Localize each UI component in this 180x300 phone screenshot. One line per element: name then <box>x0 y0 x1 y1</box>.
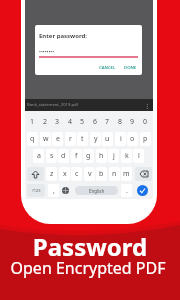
button[interactable]: . <box>121 184 132 197</box>
button[interactable]: i <box>115 132 126 146</box>
staticText: 7 <box>105 117 110 127</box>
button[interactable]: k <box>121 149 132 163</box>
button[interactable]: 6 <box>90 115 101 128</box>
staticText: 5 <box>80 117 85 127</box>
button[interactable]: r <box>65 132 76 146</box>
button[interactable]: x <box>59 167 70 181</box>
button[interactable]: 5 <box>77 115 88 128</box>
button[interactable]: l <box>133 149 144 163</box>
staticText: v <box>88 169 92 179</box>
button[interactable] <box>27 167 44 181</box>
button[interactable]: 4 <box>65 115 76 128</box>
staticText: r <box>69 134 72 144</box>
button[interactable]: 0 <box>140 115 151 128</box>
button[interactable]: c <box>71 167 82 181</box>
staticText: 6 <box>93 117 98 127</box>
button[interactable]: y <box>90 132 101 146</box>
staticText: z <box>50 169 54 179</box>
staticText: 3 <box>55 117 60 127</box>
staticText: w <box>43 134 49 144</box>
button[interactable]: ?123 <box>27 184 45 197</box>
button[interactable]: f <box>71 149 82 163</box>
staticText: j <box>113 151 115 161</box>
button[interactable]: u <box>102 132 113 146</box>
button[interactable]: h <box>96 149 107 163</box>
staticText: Password <box>0 230 180 263</box>
button[interactable]: q <box>27 132 38 146</box>
staticText: m <box>123 169 130 179</box>
button[interactable]: 7 <box>102 115 113 128</box>
staticText: k <box>125 151 129 161</box>
button[interactable]: w <box>40 132 51 146</box>
staticText: 4 <box>68 117 73 127</box>
staticText: b <box>99 169 104 179</box>
staticText: CANCEL <box>99 64 116 70</box>
staticText: DONE <box>124 64 137 70</box>
button[interactable]: 2 <box>40 115 51 128</box>
staticText: x <box>63 169 67 179</box>
staticText: 1 <box>30 117 35 127</box>
staticText: 8 <box>118 117 123 127</box>
staticText: u <box>105 134 110 144</box>
staticText: Enter password: <box>39 32 88 40</box>
button[interactable]: m <box>121 167 132 181</box>
staticText: . <box>126 186 128 196</box>
staticText: s <box>50 151 54 161</box>
staticText: ⋮ <box>144 102 150 109</box>
button[interactable]: d <box>58 149 69 163</box>
staticText: e <box>56 134 60 144</box>
button[interactable]: v <box>84 167 95 181</box>
button[interactable]: 3 <box>52 115 63 128</box>
staticText: English <box>89 188 105 194</box>
button[interactable] <box>135 167 152 181</box>
button[interactable]: g <box>83 149 94 163</box>
staticText: i <box>120 134 122 144</box>
staticText: f <box>75 151 78 161</box>
staticText: 0 <box>143 117 148 127</box>
button[interactable]: a <box>33 149 44 163</box>
staticText: 2 <box>43 117 48 127</box>
staticText: o <box>130 134 135 144</box>
button[interactable]: o <box>127 132 138 146</box>
button[interactable]: b <box>96 167 107 181</box>
button[interactable]: , <box>48 184 59 197</box>
button[interactable] <box>60 184 70 197</box>
staticText: Bank_statement_2019.pdf <box>27 102 79 108</box>
button[interactable]: s <box>46 149 57 163</box>
button[interactable] <box>137 185 148 196</box>
button[interactable]: t <box>77 132 88 146</box>
staticText: •••••••• <box>39 49 55 56</box>
staticText: q <box>30 134 35 144</box>
staticText: h <box>99 151 104 161</box>
staticText: a <box>37 151 41 161</box>
staticText: g <box>86 151 91 161</box>
staticText: 9 <box>130 117 135 127</box>
staticText: ?123 <box>32 188 41 193</box>
button[interactable]: English <box>75 186 118 195</box>
button[interactable]: CANCEL <box>99 64 116 70</box>
button[interactable]: n <box>109 167 120 181</box>
button[interactable]: 9 <box>127 115 138 128</box>
staticText: t <box>81 134 84 144</box>
staticText: p <box>143 134 148 144</box>
staticText: d <box>61 151 66 161</box>
button[interactable]: 8 <box>115 115 126 128</box>
staticText: n <box>112 169 117 179</box>
staticText: c <box>75 169 79 179</box>
staticText: l <box>138 151 140 161</box>
button[interactable]: p <box>140 132 151 146</box>
staticText: y <box>94 134 98 144</box>
button[interactable]: e <box>52 132 63 146</box>
staticText: , <box>53 186 55 196</box>
staticText: Open Encrypted PDF <box>0 257 178 279</box>
button[interactable]: DONE <box>124 64 137 70</box>
button[interactable]: z <box>46 167 57 181</box>
button[interactable]: 1 <box>27 115 38 128</box>
button[interactable]: j <box>108 149 119 163</box>
